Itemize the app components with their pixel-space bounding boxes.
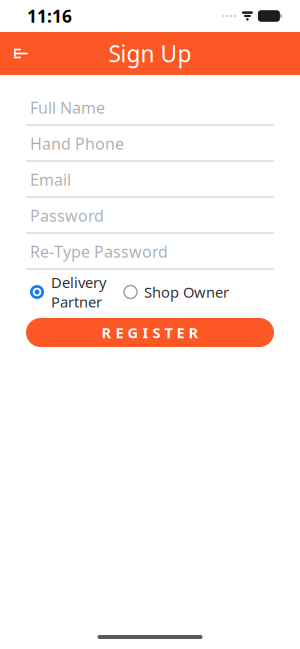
- staticText: Email: [30, 169, 71, 190]
- button[interactable]: Back: [0, 32, 42, 75]
- button[interactable]: Delivery Partner: [30, 268, 106, 315]
- staticText: 11:16: [27, 4, 72, 27]
- staticText: Delivery Partner: [51, 272, 106, 311]
- staticText: Password: [30, 205, 104, 226]
- staticText: Re-Type Password: [30, 241, 168, 262]
- button[interactable]: Shop Owner: [124, 278, 229, 306]
- staticText: Full Name: [30, 97, 105, 118]
- button[interactable]: R E G I S T E R: [26, 318, 274, 347]
- staticText: Hand Phone: [30, 133, 124, 154]
- staticText: Shop Owner: [144, 282, 229, 302]
- staticText: Sign Up: [108, 38, 191, 68]
- staticText: R E G I S T E R: [101, 323, 198, 342]
